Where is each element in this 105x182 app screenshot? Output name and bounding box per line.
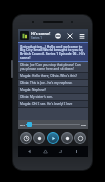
staticText: Magda: Nephew? [20, 88, 46, 92]
button[interactable]: Stop [74, 132, 86, 144]
button[interactable]: Home [41, 147, 50, 156]
button[interactable]: Menu [77, 31, 86, 40]
button[interactable]: Magda: Hello there, Olivia. Who's this? [18, 73, 88, 80]
button[interactable]: Shuffle [65, 31, 74, 40]
staticText: Hi's scene! [31, 31, 51, 36]
button[interactable]: Headphones [53, 31, 62, 40]
button[interactable]: Back [25, 147, 34, 156]
button[interactable]: Seek bar [18, 120, 88, 129]
button[interactable]: Magda: Nephew? [18, 87, 88, 94]
button[interactable]: Olivia: This is Joe - he's my nephew. [18, 80, 88, 87]
button[interactable]: Magda: Oh! I see. He's lovely! I love [18, 101, 88, 108]
staticText: Magda: Hello there, Olivia. Who's this? [20, 74, 77, 78]
staticText: 5:08 [81, 123, 86, 126]
button[interactable]: Sleep timer [20, 132, 32, 144]
staticText: 0:12 [20, 123, 25, 126]
button[interactable]: Options [72, 147, 81, 156]
button[interactable]: Next [61, 132, 73, 144]
button[interactable]: (Introduction...) Hello and welcome to B… [18, 42, 88, 62]
staticText: (Introduction...) Hello and welcome to B… [20, 44, 86, 60]
staticText: Series 1 Episode 06 [31, 36, 53, 40]
button[interactable]: App icon [20, 31, 29, 40]
staticText: Olivia: Joe! Can you stop that please! C… [20, 63, 86, 71]
button[interactable]: Olivia: My sister's son. [18, 94, 88, 101]
button[interactable]: Play [47, 132, 59, 144]
button[interactable]: Recent apps [56, 147, 65, 156]
staticText: Olivia: My sister's son. [20, 95, 53, 99]
staticText: Magda: Oh! I see. He's lovely! I love [20, 102, 73, 106]
button[interactable]: Olivia: Joe! Can you stop that please! C… [18, 62, 88, 73]
button[interactable]: Previous [33, 132, 45, 144]
button[interactable]: Hi's scene! [31, 31, 53, 40]
staticText: Olivia: This is Joe - he's my nephew. [20, 81, 73, 85]
